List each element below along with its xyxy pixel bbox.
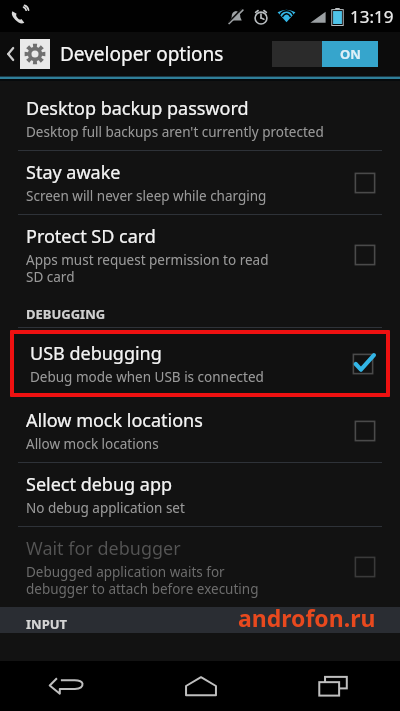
staticText: androfon.ru: [238, 602, 376, 633]
staticText: Desktop full backups aren't currently pr…: [26, 123, 324, 141]
staticText: Debug mode when USB is connected: [30, 368, 264, 386]
staticText: USB debugging: [30, 341, 162, 366]
button[interactable]: Back: [0, 661, 134, 711]
button[interactable]: Unchecked: [348, 414, 382, 448]
staticText: Stay awake: [26, 160, 121, 185]
staticText: 13:19: [350, 5, 394, 28]
button[interactable]: Wait for debugger: [0, 527, 400, 607]
staticText: Wait for debugger: [26, 536, 181, 561]
staticText: Protect SD card: [26, 224, 156, 249]
button[interactable]: Unchecked: [348, 166, 382, 200]
button[interactable]: USB debugging: [14, 334, 386, 393]
staticText: INPUT: [26, 615, 68, 633]
staticText: Select debug app: [26, 472, 173, 497]
button[interactable]: Unchecked: [348, 550, 382, 584]
staticText: Debugged application waits for debugger …: [26, 563, 259, 598]
staticText: ON: [340, 45, 361, 63]
staticText: Allow mock locations: [26, 435, 159, 453]
button[interactable]: Protect SD card: [0, 215, 400, 295]
staticText: Apps must request permission to read SD …: [26, 251, 269, 286]
button[interactable]: Navigate up: [0, 39, 230, 69]
button[interactable]: USB debugging: [14, 334, 386, 393]
button[interactable]: Stay awake: [0, 151, 400, 214]
staticText: Allow mock locations: [26, 408, 203, 433]
staticText: DEBUGGING: [26, 305, 106, 323]
staticText: Desktop backup password: [26, 96, 249, 121]
button[interactable]: Unchecked: [348, 238, 382, 272]
button[interactable]: Desktop backup password: [0, 87, 400, 150]
button[interactable]: Checked: [346, 347, 380, 381]
button[interactable]: Home: [134, 661, 267, 711]
staticText: Screen will never sleep while charging: [26, 187, 267, 205]
button[interactable]: Recent apps: [267, 661, 400, 711]
button[interactable]: Developer options on: [272, 41, 378, 67]
staticText: No debug application set: [26, 499, 185, 517]
button[interactable]: Allow mock locations: [0, 399, 400, 462]
button[interactable]: Select debug app: [0, 463, 400, 526]
staticText: Developer options: [60, 41, 224, 67]
